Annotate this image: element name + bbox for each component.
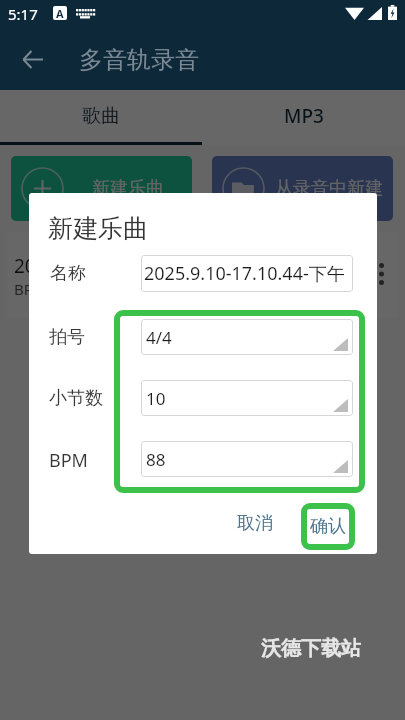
button[interactable]: 88 [141,441,353,477]
staticText: 从录音中新建 [275,177,383,200]
staticText: 4/4 [146,326,172,349]
button[interactable]: 10 [141,380,353,416]
staticText: 确认 [310,515,346,538]
button[interactable]: 取消 [226,502,284,544]
button[interactable]: MP3 [202,90,405,142]
staticText: 5:17 [8,4,38,24]
staticText: 取消 [237,512,273,535]
staticText: 88 [146,448,166,471]
staticText: A [56,6,64,20]
button[interactable]: 4/4 [141,319,353,355]
button[interactable]: 确认 [301,503,355,550]
staticText: 沃德下载站 [261,636,361,661]
staticText: 拍号 [49,326,85,349]
staticText: 2025.9.10-17.10.44-下午 [144,261,345,286]
staticText: 小节数 [49,387,103,410]
button[interactable]: Back [10,37,54,81]
staticText: BPM 88 4/4 10小节 [14,279,153,299]
staticText: 新建乐曲 [48,213,148,244]
staticText: 10 [146,387,166,410]
button[interactable]: More options [370,252,396,296]
staticText: 新建乐曲 [92,177,164,200]
staticText: 名称 [50,262,86,285]
staticText: MP3 [284,103,324,129]
staticText: 歌曲 [82,104,120,128]
button[interactable]: 新建乐曲 [11,156,192,221]
staticText: 多音轨录音 [79,45,199,75]
staticText: 2025.9.10-17.09.52-下午 [14,253,226,279]
button[interactable]: 2025.9.10-17.10.44-下午 [141,255,353,292]
button[interactable]: 2025.9.10-17.09.52-下午 [7,232,398,318]
button[interactable]: 从录音中新建 [212,156,393,221]
button[interactable]: 歌曲 [0,90,202,142]
staticText: BPM [49,448,88,473]
